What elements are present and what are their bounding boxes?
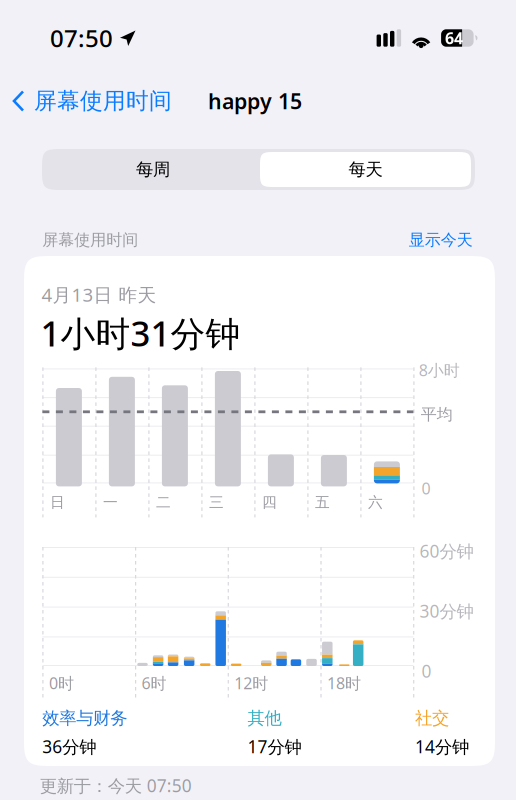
button[interactable]: 社交 xyxy=(415,708,469,758)
staticText: 每天 xyxy=(348,159,382,180)
staticText: 一 xyxy=(103,493,118,511)
button[interactable]: 其他 xyxy=(248,708,302,758)
staticText: 0 xyxy=(422,660,432,683)
button[interactable]: 效率与财务 xyxy=(42,708,127,758)
staticText: 30分钟 xyxy=(419,600,473,623)
staticText: 日 xyxy=(50,493,65,511)
staticText: 二 xyxy=(156,493,171,511)
staticText: 12时 xyxy=(234,672,268,694)
staticText: 屏幕使用时间 xyxy=(42,230,138,250)
staticText: 三 xyxy=(209,493,224,511)
staticText: 显示今天 xyxy=(409,230,473,250)
staticText: 六 xyxy=(368,493,383,511)
staticText: 四 xyxy=(262,493,277,511)
button[interactable]: 屏幕使用时间 xyxy=(0,80,176,122)
staticText: 0 xyxy=(422,478,431,499)
staticText: 07:50 xyxy=(50,22,113,54)
button[interactable]: 每天 xyxy=(260,152,471,187)
staticText: 每周 xyxy=(136,159,170,180)
staticText: 4月13日 昨天 xyxy=(41,282,156,307)
staticText: 36分钟 xyxy=(42,735,96,758)
button[interactable]: 显示今天 xyxy=(409,230,473,250)
staticText: 0时 xyxy=(49,672,74,694)
staticText: 8小时 xyxy=(419,359,460,381)
staticText: 社交 xyxy=(415,708,449,729)
staticText: happy 15 xyxy=(208,87,302,115)
staticText: 平均 xyxy=(421,404,453,424)
staticText: 五 xyxy=(315,493,330,511)
staticText: 其他 xyxy=(248,708,282,729)
staticText: 17分钟 xyxy=(248,735,302,758)
staticText: 18时 xyxy=(327,672,361,694)
staticText: 更新于：今天 07:50 xyxy=(40,774,192,797)
staticText: 64 xyxy=(445,27,463,49)
button[interactable]: 每周 xyxy=(46,152,260,187)
staticText: 屏幕使用时间 xyxy=(34,87,172,115)
staticText: 效率与财务 xyxy=(42,708,127,729)
staticText: 60分钟 xyxy=(419,540,473,563)
staticText: 1小时31分钟 xyxy=(40,310,240,356)
staticText: 14分钟 xyxy=(415,735,469,758)
staticText: 6时 xyxy=(142,672,167,694)
